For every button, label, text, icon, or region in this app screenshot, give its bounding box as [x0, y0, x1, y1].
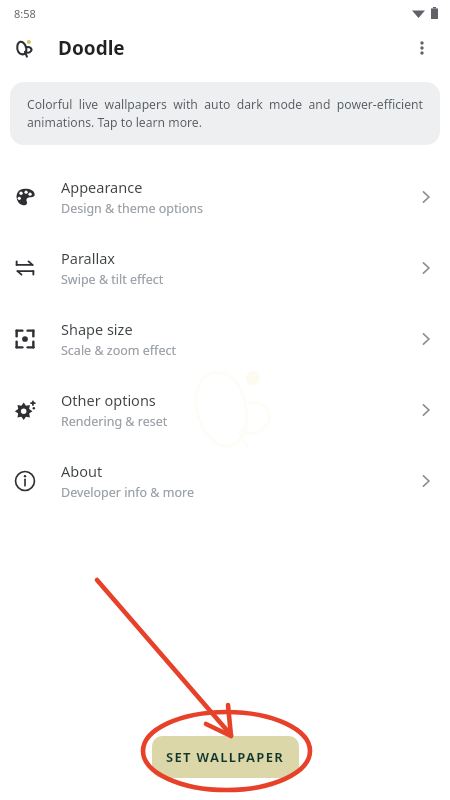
- button[interactable]: Shape size: [0, 303, 450, 374]
- staticText: 8:58: [14, 6, 36, 21]
- button[interactable]: Parallax: [0, 232, 450, 303]
- staticText: Swipe & tilt effect: [61, 271, 164, 288]
- staticText: Colorful live wallpapers with auto dark …: [27, 96, 423, 131]
- staticText: Shape size: [61, 319, 133, 339]
- staticText: Parallax: [61, 248, 116, 268]
- staticText: Design & theme options: [61, 200, 203, 217]
- staticText: Developer info & more: [61, 484, 194, 501]
- staticText: Appearance: [61, 177, 143, 197]
- staticText: Rendering & reset: [61, 413, 168, 430]
- button[interactable]: Other options: [0, 374, 450, 445]
- button[interactable]: More options: [400, 26, 444, 70]
- button[interactable]: Appearance: [0, 161, 450, 232]
- staticText: Doodle: [58, 35, 125, 61]
- staticText: About: [61, 461, 103, 481]
- staticText: SET WALLPAPER: [166, 748, 285, 766]
- staticText: Scale & zoom effect: [61, 342, 176, 359]
- button[interactable]: About: [0, 445, 450, 516]
- staticText: Other options: [61, 390, 156, 410]
- button[interactable]: SET WALLPAPER: [152, 736, 299, 778]
- button[interactable]: Colorful live wallpapers with auto dark …: [10, 82, 440, 145]
